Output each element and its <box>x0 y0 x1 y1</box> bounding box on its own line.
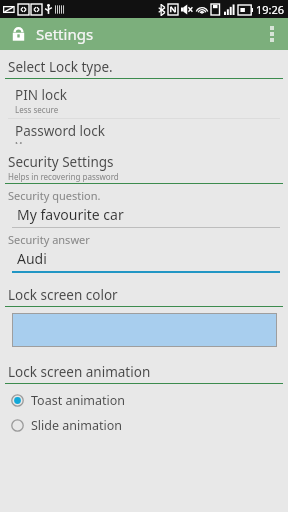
staticText: Security question. <box>8 188 101 203</box>
staticText: Less secure <box>15 104 59 115</box>
staticText: PIN lock <box>15 86 67 104</box>
staticText: Toast animation <box>31 392 126 409</box>
button[interactable]: Toast animation <box>5 388 283 413</box>
button[interactable]: Audi <box>12 247 280 273</box>
staticText: My favourite car <box>17 205 124 224</box>
staticText: More secure <box>15 140 62 144</box>
staticText: Select Lock type. <box>8 58 113 76</box>
button[interactable]: More options <box>256 18 288 50</box>
staticText: Settings <box>36 24 94 44</box>
button[interactable]: Lock screen color <box>12 313 277 347</box>
staticText: Lock screen color <box>8 286 118 304</box>
staticText: Audi <box>17 249 47 268</box>
staticText: Lock screen animation <box>8 363 151 381</box>
button[interactable]: PIN lock <box>5 83 283 118</box>
staticText: Security answer <box>8 232 90 247</box>
staticText: 19:26 <box>256 2 285 17</box>
button[interactable]: Slide animation <box>5 413 283 438</box>
staticText: Helps in recovering password <box>8 171 119 182</box>
staticText: Security Settings <box>8 153 114 171</box>
button[interactable]: My favourite car <box>12 203 280 228</box>
staticText: Password lock <box>15 122 105 140</box>
button[interactable]: Password lock <box>5 119 283 147</box>
staticText: Slide animation <box>31 417 122 434</box>
